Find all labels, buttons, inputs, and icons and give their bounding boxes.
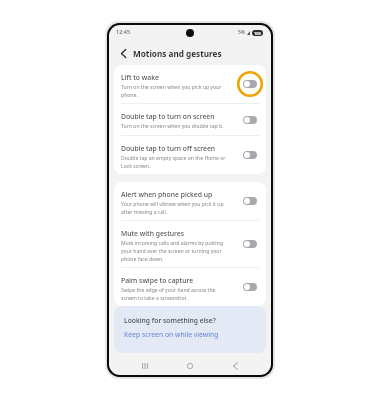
button[interactable]: Palm swipe to capture — [238, 280, 261, 294]
staticText: Your phone will vibrate when you pick it… — [121, 201, 227, 215]
button[interactable]: Double tap to turn off screen — [238, 148, 261, 162]
staticText: 100 — [254, 31, 261, 36]
button[interactable]: Double tap to turn on screen — [114, 104, 266, 135]
button[interactable]: Mute with gestures — [238, 237, 261, 251]
staticText: Double tap an empty space on the Home or… — [121, 155, 227, 169]
staticText: Double tap to turn on screen — [121, 112, 215, 121]
staticText: 12:45 — [116, 28, 131, 35]
staticText: Lift to wake — [121, 73, 159, 82]
staticText: Mute with gestures — [121, 229, 184, 238]
staticText: Turn on the screen when you double tap i… — [121, 123, 224, 130]
staticText: Looking for something else? — [124, 316, 216, 325]
staticText: Alert when phone picked up — [121, 190, 213, 199]
staticText: Swipe the edge of your hand across the s… — [121, 287, 227, 301]
button[interactable]: Alert when phone picked up — [114, 182, 266, 220]
button[interactable]: Recents — [136, 357, 154, 375]
button[interactable]: Mute with gestures — [114, 221, 266, 267]
button[interactable]: Alert when phone picked up — [238, 194, 261, 208]
button[interactable]: Palm swipe to capture — [114, 268, 266, 306]
button[interactable]: Lift to wake — [114, 65, 266, 103]
button[interactable]: Home — [181, 357, 199, 375]
staticText: Turn on the screen when you pick up your… — [121, 84, 227, 98]
button[interactable]: Keep screen on while viewing — [124, 330, 219, 339]
button[interactable]: Lift to wake — [238, 77, 261, 91]
button[interactable]: Back — [118, 48, 129, 59]
staticText: Double tap to turn off screen — [121, 144, 216, 153]
staticText: Palm swipe to capture — [121, 276, 194, 285]
staticText: Mute incoming calls and alarms by puttin… — [121, 240, 227, 262]
staticText: Motions and gestures — [133, 48, 222, 59]
button[interactable]: Back — [226, 357, 244, 375]
button[interactable]: Double tap to turn off screen — [114, 136, 266, 174]
staticText: 5% — [238, 29, 246, 36]
button[interactable]: Double tap to turn on screen — [238, 113, 261, 127]
